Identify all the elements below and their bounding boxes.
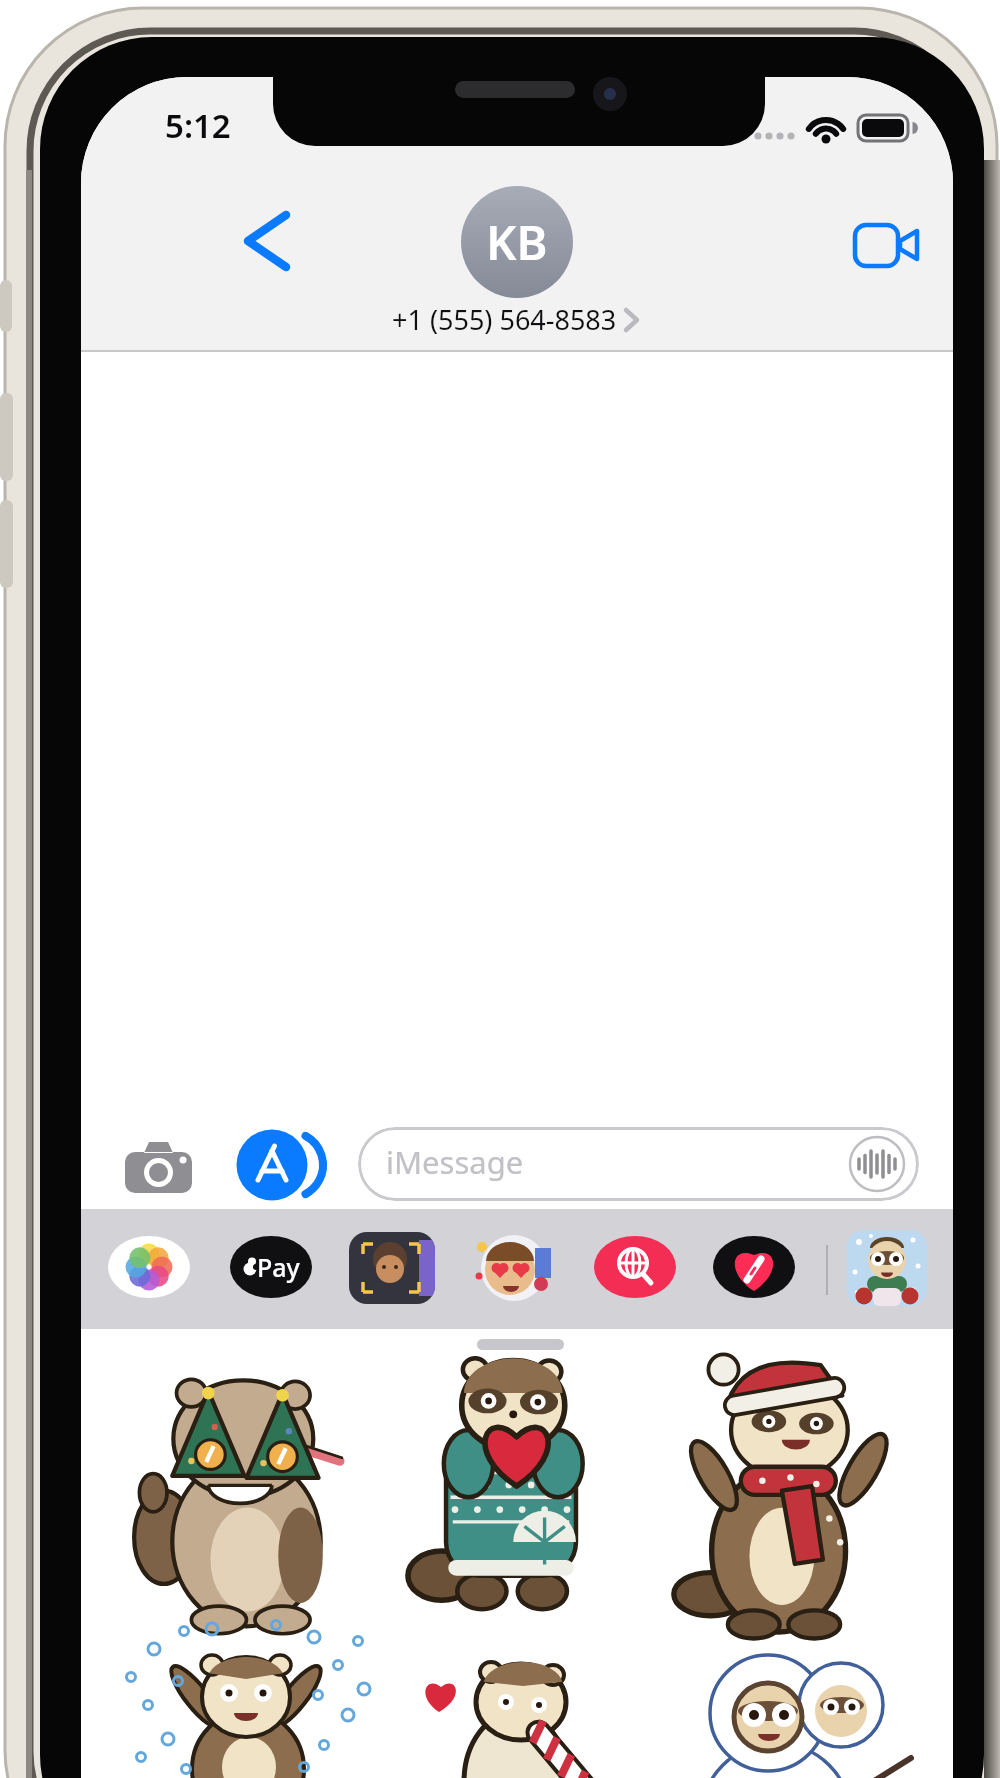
button[interactable]: Pay xyxy=(229,1235,313,1299)
button[interactable]: KB xyxy=(461,186,573,298)
button[interactable] xyxy=(647,1637,920,1778)
button[interactable]: +1 (555) 564-8583 xyxy=(81,301,953,338)
button[interactable] xyxy=(647,1377,920,1622)
staticText: +1 (555) 564-8583 xyxy=(392,301,617,338)
button[interactable] xyxy=(349,1232,435,1304)
staticText: KB xyxy=(486,210,548,274)
button[interactable] xyxy=(374,1377,647,1622)
button[interactable]: iMessage xyxy=(358,1127,919,1201)
button[interactable] xyxy=(221,187,311,297)
button[interactable] xyxy=(101,1637,374,1778)
button[interactable] xyxy=(107,1235,191,1299)
staticText: iMessage xyxy=(386,1141,524,1183)
button[interactable] xyxy=(111,1127,206,1207)
button[interactable] xyxy=(374,1637,647,1778)
button[interactable] xyxy=(847,1230,927,1306)
button[interactable] xyxy=(101,1377,374,1622)
button[interactable] xyxy=(712,1235,796,1299)
staticText: 5:12 xyxy=(165,103,231,148)
button[interactable] xyxy=(231,1122,346,1212)
button[interactable] xyxy=(593,1235,677,1299)
staticText: Pay xyxy=(257,1250,300,1284)
button[interactable] xyxy=(836,212,936,282)
button[interactable] xyxy=(471,1232,557,1304)
